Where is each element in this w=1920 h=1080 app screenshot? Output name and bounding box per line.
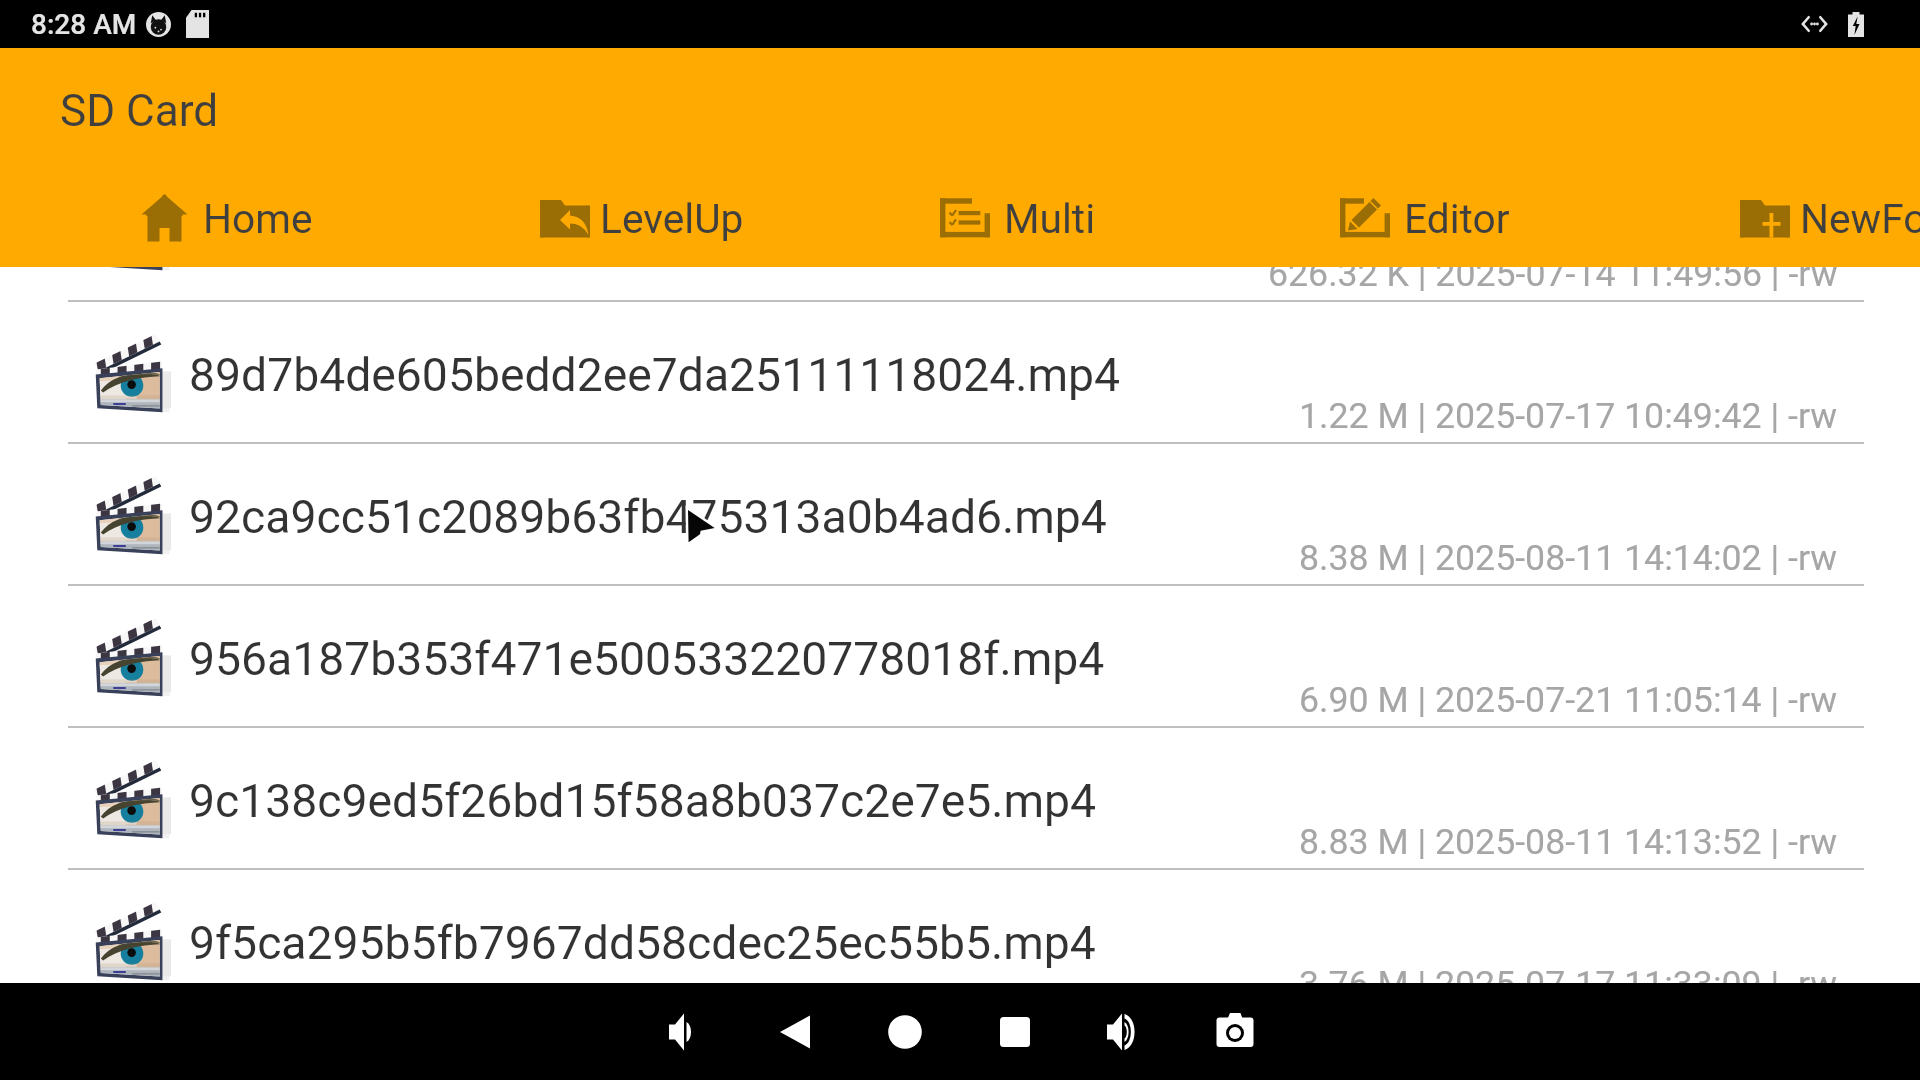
button[interactable]: 89d7b4de605bedd2ee7da25111118024.mp4 [0, 302, 1920, 444]
staticText: 89d7b4de605bedd2ee7da25111118024.mp4 [189, 348, 1121, 402]
staticText: NewFolder [1800, 195, 1920, 243]
staticText: Multi [1004, 195, 1096, 243]
button[interactable]: LevelUp [540, 170, 744, 267]
button[interactable]: 956a187b353f471e500533220778018f.mp4 [0, 586, 1920, 728]
button[interactable]: 8862b56ab2a5a15c3c7a9c0c66b1d40a.mp4 [0, 160, 1920, 302]
staticText: Editor [1404, 195, 1510, 243]
button[interactable]: Recent apps [960, 983, 1070, 1080]
button[interactable]: Screenshot [1180, 983, 1290, 1080]
staticText: 8862b56ab2a5a15c3c7a9c0c66b1d40a.mp4 [189, 206, 1116, 260]
button[interactable]: 9c138c9ed5f26bd15f58a8b037c2e7e5.mp4 [0, 728, 1920, 870]
button[interactable]: NewFolder [1740, 170, 1920, 267]
button[interactable]: 92ca9cc51c2089b63fb475313a0b4ad6.mp4 [0, 444, 1920, 586]
staticText: 3.76 M | 2025-07-17 11:33:09 | -rw [1299, 963, 1838, 1005]
button[interactable]: Home [850, 983, 960, 1080]
staticText: 8:28 AM [31, 8, 137, 41]
staticText: 8.38 M | 2025-08-11 14:14:02 | -rw [1299, 537, 1838, 579]
staticText: LevelUp [600, 195, 744, 243]
button[interactable]: Home [140, 170, 313, 267]
button[interactable]: Back [740, 983, 850, 1080]
staticText: 8.83 M | 2025-08-11 14:13:52 | -rw [1299, 821, 1838, 863]
staticText: Home [203, 195, 313, 243]
button[interactable]: Multi [940, 170, 1096, 267]
staticText: 92ca9cc51c2089b63fb475313a0b4ad6.mp4 [189, 490, 1107, 544]
staticText: SD Card [60, 85, 219, 137]
button[interactable]: Editor [1340, 170, 1510, 267]
staticText: 9c138c9ed5f26bd15f58a8b037c2e7e5.mp4 [189, 774, 1097, 828]
staticText: 6.90 M | 2025-07-21 11:05:14 | -rw [1299, 679, 1838, 721]
staticText: 9f5ca295b5fb7967dd58cdec25ec55b5.mp4 [189, 916, 1096, 970]
button[interactable]: Volume up [1070, 983, 1180, 1080]
staticText: 956a187b353f471e500533220778018f.mp4 [189, 632, 1105, 686]
staticText: 1.22 M | 2025-07-17 10:49:42 | -rw [1299, 395, 1838, 437]
button[interactable]: 9f5ca295b5fb7967dd58cdec25ec55b5.mp4 [0, 870, 1920, 1012]
staticText: 626.32 K | 2025-07-14 11:49:56 | -rw [1268, 253, 1838, 295]
button[interactable]: Volume down [630, 983, 740, 1080]
